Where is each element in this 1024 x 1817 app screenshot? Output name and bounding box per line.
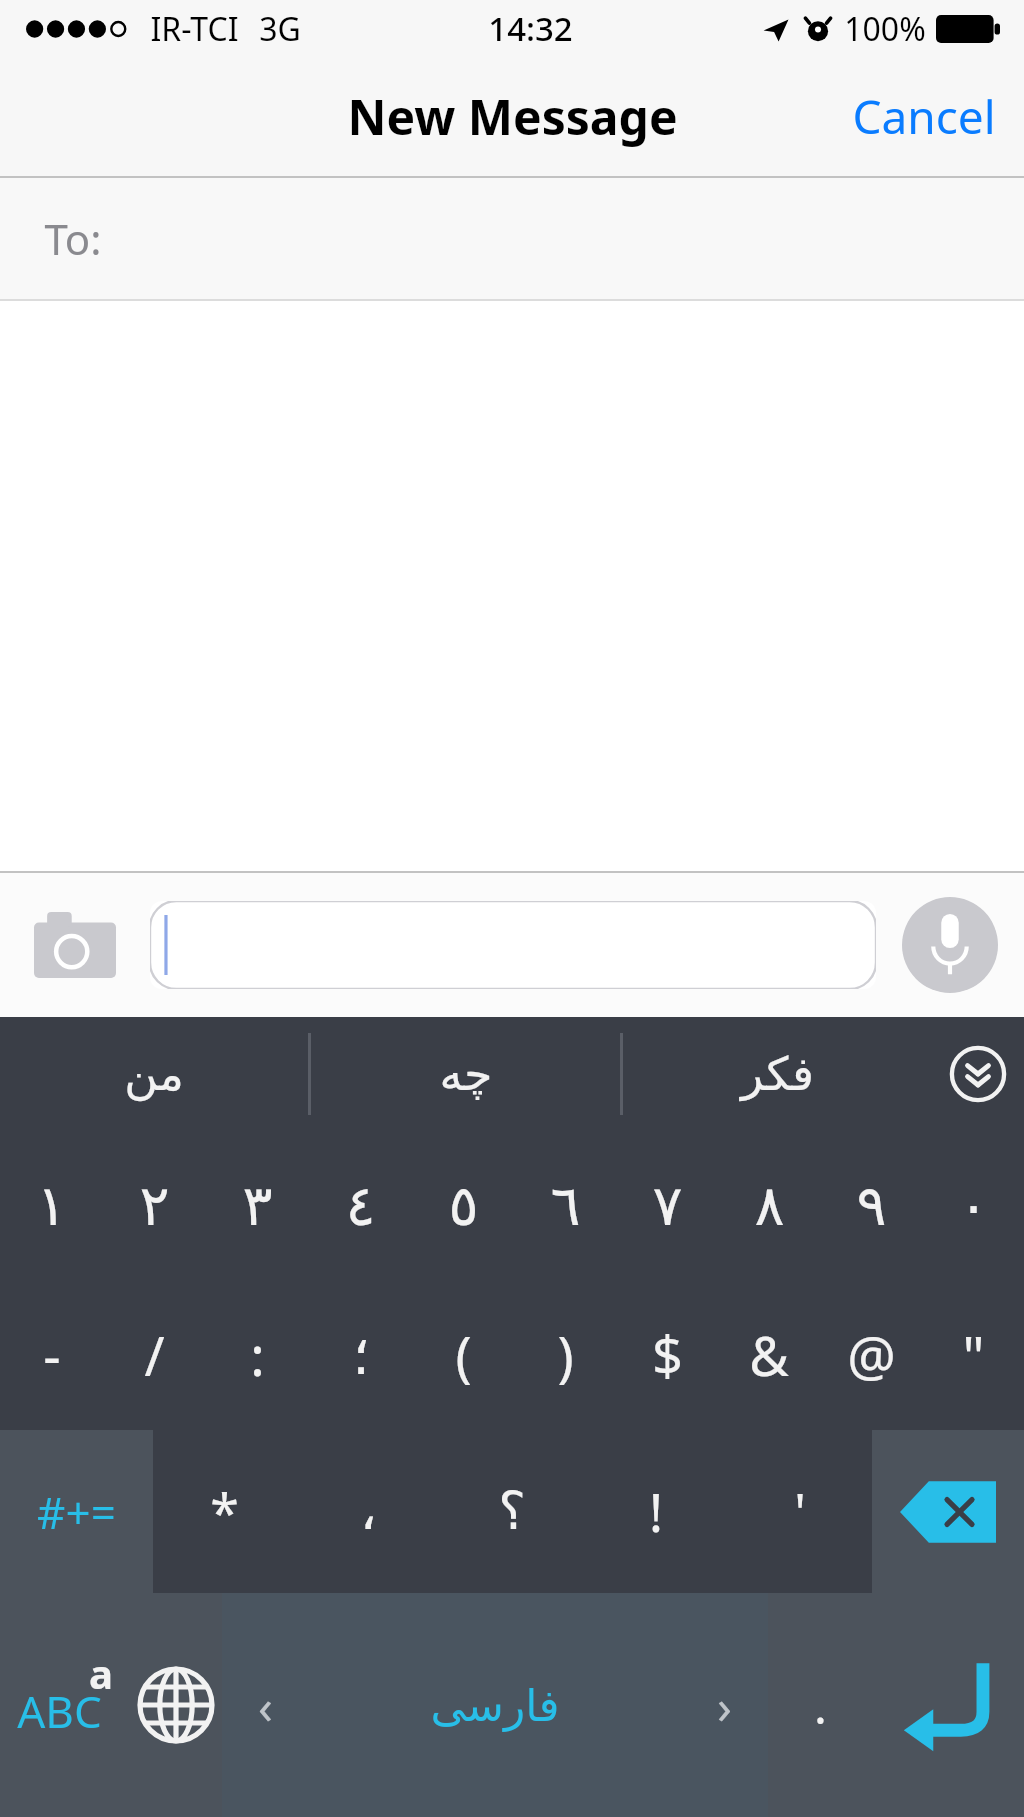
staticText: $ [652,1318,683,1392]
staticText: فکر [741,1047,814,1101]
button[interactable]: من [0,1017,308,1130]
staticText: ' [794,1476,806,1547]
button[interactable]: #+= [0,1430,153,1593]
staticText: & [749,1318,789,1392]
staticText: ‹ [258,1673,273,1738]
button[interactable]: ٠ [922,1130,1024,1280]
staticText: @ [847,1318,896,1392]
staticText: ؛ [352,1324,370,1387]
staticText: 14:32 [488,6,573,51]
staticText: * [210,1476,239,1547]
button[interactable]: . [768,1593,872,1817]
button[interactable]: " [922,1280,1024,1430]
staticText: / [144,1318,165,1392]
button[interactable]: $ [616,1280,718,1430]
button[interactable]: ؛ [309,1280,412,1430]
staticText: . [814,1673,827,1738]
staticText: ٢ [139,1173,170,1238]
button[interactable]: Return [872,1593,1024,1817]
staticText: ٦ [550,1173,581,1238]
button[interactable]: * [153,1430,296,1593]
button[interactable]: فارسی [222,1593,768,1817]
staticText: ٠ [958,1173,989,1238]
staticText: ٨ [754,1173,785,1238]
button[interactable]: ١ [0,1130,103,1280]
button[interactable]: ( [412,1280,514,1430]
staticText: New Message [347,84,678,149]
staticText: ٣ [242,1173,273,1238]
button[interactable]: @ [820,1280,922,1430]
button[interactable] [150,901,876,989]
staticText: #+= [37,1482,116,1542]
staticText: ٤ [345,1173,376,1238]
button[interactable]: چه [311,1017,620,1130]
staticText: ABC [17,1681,102,1741]
button[interactable]: ؟ [440,1430,584,1593]
staticText: ! [649,1476,663,1547]
staticText: : [250,1318,265,1392]
staticText: 100% [844,7,926,51]
staticText: " [962,1318,985,1392]
staticText: ٧ [652,1173,683,1238]
button[interactable]: ٨ [718,1130,820,1280]
button[interactable]: Camera [0,873,150,1017]
staticText: - [43,1318,61,1392]
button[interactable]: ! [584,1430,728,1593]
button[interactable]: ٩ [820,1130,922,1280]
button[interactable]: / [103,1280,206,1430]
staticText: ٥ [448,1173,479,1238]
staticText: ؟ [498,1481,526,1542]
staticText: چه [439,1047,493,1101]
staticText: ١ [36,1173,67,1238]
button[interactable]: Cancel [824,57,1024,176]
button[interactable]: ' [728,1430,872,1593]
button[interactable]: Voice message [876,873,1024,1017]
button[interactable]: ٥ [412,1130,514,1280]
staticText: فارسی [430,1680,560,1731]
staticText: 3G [259,7,301,51]
button[interactable]: Hide keyboard [932,1017,1024,1130]
button[interactable]: : [206,1280,309,1430]
staticText: Cancel [852,85,996,148]
button[interactable]: Backspace [872,1430,1024,1593]
button[interactable]: To: [0,178,1024,299]
staticText: ٩ [856,1173,887,1238]
staticText: To: [44,210,102,267]
staticText: ) [557,1318,574,1392]
button[interactable]: ، [296,1430,440,1593]
button[interactable]: ) [514,1280,616,1430]
staticText: › [717,1673,732,1738]
staticText: من [124,1047,184,1101]
button[interactable]: ABC [0,1593,130,1817]
button[interactable]: ٤ [309,1130,412,1280]
staticText: IR-TCI [150,7,239,51]
button[interactable]: Next keyboard [130,1593,222,1817]
staticText: ( [455,1318,472,1392]
button[interactable]: ٢ [103,1130,206,1280]
button[interactable]: & [718,1280,820,1430]
button[interactable]: ٧ [616,1130,718,1280]
staticText: ، [360,1481,377,1542]
button[interactable]: - [0,1280,103,1430]
button[interactable]: ٦ [514,1130,616,1280]
button[interactable]: ٣ [206,1130,309,1280]
staticText: a [89,1646,113,1700]
button[interactable]: فکر [623,1017,932,1130]
